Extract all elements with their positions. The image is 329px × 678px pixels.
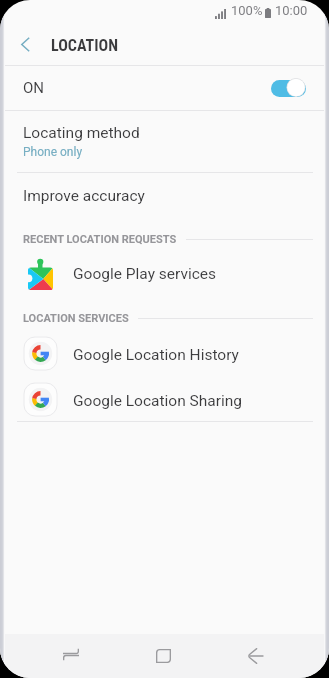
- button[interactable]: Improve accuracy: [0, 173, 329, 218]
- staticText: Google Play services: [73, 265, 217, 283]
- button[interactable]: ON: [0, 66, 329, 110]
- staticText: LOCATION: [51, 36, 118, 55]
- button[interactable]: Navigate up: [0, 30, 52, 65]
- staticText: 100%: [231, 3, 263, 18]
- staticText: RECENT LOCATION REQUESTS: [23, 233, 177, 246]
- button[interactable]: Google Play services: [0, 251, 329, 297]
- staticText: Phone only: [23, 145, 83, 159]
- staticText: Google Location History: [73, 346, 239, 364]
- staticText: LOCATION SERVICES: [23, 312, 129, 325]
- button[interactable]: Home: [117, 634, 209, 678]
- button[interactable]: Back: [209, 634, 301, 678]
- button[interactable]: Recent apps: [25, 634, 117, 678]
- button[interactable]: Google Location History: [0, 332, 329, 378]
- button[interactable]: Google Location Sharing: [0, 378, 329, 424]
- staticText: Locating method: [23, 124, 140, 142]
- staticText: 10:00: [275, 3, 308, 18]
- staticText: ON: [23, 79, 45, 97]
- button[interactable]: Locating method: [0, 111, 329, 172]
- staticText: Improve accuracy: [23, 187, 145, 205]
- staticText: Google Location Sharing: [73, 392, 243, 410]
